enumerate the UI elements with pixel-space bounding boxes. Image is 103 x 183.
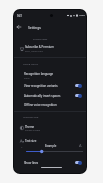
staticText: voice <box>24 77 30 80</box>
staticText: Offline voice recognition <box>24 103 57 107</box>
staticText: Follow system <box>25 129 41 132</box>
staticText: Sync, more tools <box>25 50 43 53</box>
staticText: Theme <box>25 125 35 129</box>
button[interactable] <box>14 158 86 167</box>
staticText: Show lines <box>24 161 39 165</box>
staticText: A <box>21 146 23 149</box>
staticText: Text size <box>25 139 37 143</box>
staticText: A <box>79 143 82 148</box>
staticText: PURCHASED <box>33 37 48 40</box>
button[interactable]: Toggle <box>75 84 81 87</box>
staticText: 100% <box>79 14 85 17</box>
button[interactable] <box>14 81 86 91</box>
button[interactable]: Back <box>15 23 23 31</box>
staticText: APPEARANCE <box>23 115 39 118</box>
staticText: View recognition variants <box>24 84 58 88</box>
staticText: 9:41 <box>17 14 22 17</box>
button[interactable] <box>14 69 86 80</box>
staticText: Automatically insert spaces <box>24 94 61 98</box>
staticText: Subscribe & Premium <box>25 45 54 49</box>
button[interactable] <box>14 100 86 110</box>
button[interactable] <box>14 42 86 53</box>
button[interactable]: Toggle <box>75 161 81 164</box>
staticText: Recognition language <box>24 72 54 76</box>
button[interactable] <box>14 91 86 101</box>
button[interactable] <box>14 136 86 146</box>
staticText: Example <box>45 144 57 148</box>
staticText: Settings <box>28 25 41 30</box>
button[interactable]: Toggle <box>75 94 81 97</box>
button[interactable] <box>14 121 86 132</box>
button[interactable]: Text size slider <box>24 149 84 155</box>
staticText: VOICE INPUT <box>23 62 39 65</box>
